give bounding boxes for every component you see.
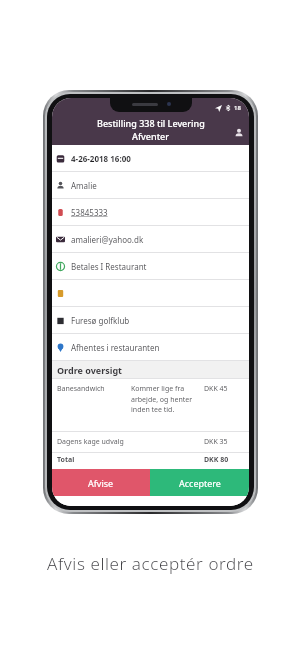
staticText: Afventer bbox=[132, 130, 170, 142]
staticText: 53845333 bbox=[71, 207, 108, 218]
button[interactable]: 53845333 bbox=[52, 199, 249, 225]
staticText: amalieri@yahoo.dk bbox=[71, 234, 144, 245]
staticText: Total bbox=[57, 455, 204, 465]
button[interactable]: Furesø golfklub bbox=[52, 307, 249, 333]
staticText: Dagens kage udvalg bbox=[57, 437, 204, 447]
staticText: Afvise bbox=[88, 477, 114, 489]
button[interactable]: Account bbox=[231, 125, 247, 141]
button[interactable]: Banesandwich bbox=[52, 379, 249, 431]
button[interactable] bbox=[52, 280, 249, 306]
staticText: 18 bbox=[234, 104, 241, 112]
staticText: DKK 35 bbox=[204, 437, 244, 447]
staticText: Ordre oversigt bbox=[57, 364, 122, 376]
staticText: Amalie bbox=[71, 180, 97, 191]
button[interactable]: Afhentes i restauranten bbox=[52, 334, 249, 360]
button[interactable]: Betales I Restaurant bbox=[52, 253, 249, 279]
staticText: Betales I Restaurant bbox=[71, 261, 147, 272]
staticText: Kommer lige fra arbejde, og henter inden… bbox=[131, 384, 204, 414]
button[interactable]: Acceptere bbox=[150, 469, 249, 496]
staticText: Bestilling 338 til Levering bbox=[97, 117, 205, 129]
staticText: DKK 45 bbox=[204, 384, 244, 394]
button[interactable]: Afvise bbox=[52, 469, 150, 496]
staticText: Acceptere bbox=[179, 477, 221, 489]
button[interactable]: amalieri@yahoo.dk bbox=[52, 226, 249, 252]
button[interactable]: Amalie bbox=[52, 172, 249, 198]
button[interactable]: Dagens kage udvalg bbox=[52, 432, 249, 452]
staticText: DKK 80 bbox=[204, 455, 244, 465]
staticText: Banesandwich bbox=[57, 384, 131, 394]
staticText: Afhentes i restauranten bbox=[71, 342, 160, 353]
staticText: 4-26-2018 16:00 bbox=[71, 153, 131, 164]
button[interactable]: 4-26-2018 16:00 bbox=[52, 145, 249, 171]
staticText: Afvis eller acceptér ordre bbox=[47, 552, 254, 575]
staticText: Furesø golfklub bbox=[71, 315, 130, 326]
